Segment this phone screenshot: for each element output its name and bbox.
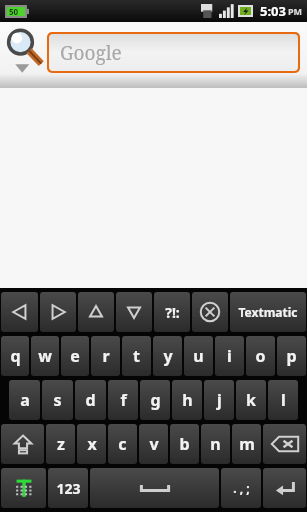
button[interactable]: 123 xyxy=(48,468,88,508)
button[interactable]: Shift xyxy=(1,424,44,464)
button[interactable]: f xyxy=(108,380,138,420)
button[interactable]: m xyxy=(232,424,261,464)
staticText: a xyxy=(20,389,30,411)
button[interactable]: c xyxy=(108,424,137,464)
staticText: h xyxy=(182,389,193,411)
button[interactable]: Search provider xyxy=(2,24,46,76)
button[interactable]: h xyxy=(172,380,202,420)
staticText: r xyxy=(102,345,110,367)
staticText: l xyxy=(281,389,286,411)
button[interactable]: Switch input method xyxy=(1,468,46,508)
button[interactable]: . , ; xyxy=(221,468,261,508)
button[interactable]: Space xyxy=(90,468,219,508)
staticText: s xyxy=(53,389,62,411)
staticText: 5:03 xyxy=(260,2,286,20)
staticText: v xyxy=(149,433,159,455)
button[interactable]: Move left xyxy=(1,292,38,332)
button[interactable]: b xyxy=(170,424,199,464)
button[interactable]: ?!: xyxy=(154,292,190,332)
staticText: . , ; xyxy=(233,480,250,496)
button[interactable]: Enter xyxy=(263,468,306,508)
staticText: g xyxy=(150,389,161,411)
staticText: i xyxy=(227,345,232,367)
button[interactable]: n xyxy=(201,424,230,464)
staticText: b xyxy=(179,433,190,455)
staticText: c xyxy=(118,433,127,455)
button[interactable]: t xyxy=(122,336,151,376)
staticText: x xyxy=(87,433,97,455)
staticText: 50 xyxy=(9,6,19,17)
button[interactable]: s xyxy=(42,380,73,420)
button[interactable]: v xyxy=(139,424,168,464)
staticText: w xyxy=(38,345,52,367)
button[interactable]: p xyxy=(277,336,306,376)
staticText: n xyxy=(210,433,221,455)
staticText: z xyxy=(57,433,65,455)
button[interactable]: Move up xyxy=(78,292,114,332)
staticText: o xyxy=(255,345,266,367)
staticText: m xyxy=(239,433,255,455)
button[interactable]: u xyxy=(184,336,213,376)
button[interactable]: Move down xyxy=(116,292,152,332)
staticText: ?!: xyxy=(165,303,180,322)
button[interactable]: Google xyxy=(49,34,298,71)
button[interactable]: r xyxy=(91,336,120,376)
button[interactable]: y xyxy=(153,336,182,376)
staticText: k xyxy=(246,389,256,411)
staticText: Google xyxy=(60,40,122,66)
staticText: p xyxy=(286,345,297,367)
staticText: 123 xyxy=(56,479,81,498)
button[interactable]: d xyxy=(75,380,106,420)
button[interactable]: Backspace xyxy=(263,424,306,464)
button[interactable]: g xyxy=(140,380,170,420)
staticText: q xyxy=(10,345,21,367)
staticText: j xyxy=(217,389,222,411)
button[interactable]: o xyxy=(246,336,275,376)
button[interactable]: k xyxy=(236,380,266,420)
staticText: t xyxy=(133,345,140,367)
button[interactable]: l xyxy=(268,380,298,420)
button[interactable]: z xyxy=(46,424,75,464)
staticText: Textmatic xyxy=(238,304,298,320)
button[interactable]: Textmatic xyxy=(230,292,306,332)
button[interactable]: Clear xyxy=(192,292,228,332)
staticText: d xyxy=(85,389,96,411)
button[interactable]: i xyxy=(215,336,244,376)
button[interactable]: e xyxy=(61,336,89,376)
staticText: PM xyxy=(288,5,303,17)
button[interactable]: Move right xyxy=(40,292,76,332)
button[interactable]: x xyxy=(77,424,106,464)
button[interactable]: w xyxy=(31,336,59,376)
button[interactable]: q xyxy=(1,336,29,376)
button[interactable]: j xyxy=(204,380,234,420)
staticText: f xyxy=(120,389,127,411)
staticText: u xyxy=(193,345,204,367)
staticText: y xyxy=(163,345,173,367)
staticText: e xyxy=(70,345,80,367)
button[interactable]: a xyxy=(9,380,40,420)
